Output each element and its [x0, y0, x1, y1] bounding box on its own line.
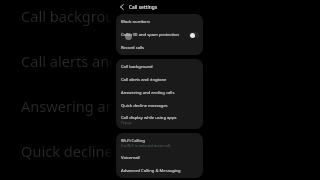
button[interactable]: Answering and ending calls	[116, 86, 203, 99]
staticText: Pop-up	[121, 121, 132, 125]
button[interactable]: Wi-Fi Calling	[116, 134, 203, 151]
staticText: Record calls	[121, 45, 145, 51]
staticText: Wi-Fi Calling	[121, 138, 145, 144]
button[interactable]: Call display while using apps	[116, 112, 203, 128]
staticText: Caller ID and spam protection	[121, 32, 180, 38]
staticText: Voicemail	[121, 155, 140, 161]
staticText: Block numbers	[121, 19, 151, 25]
staticText: Answering and ending calls	[21, 96, 210, 116]
staticText: Call background	[21, 6, 133, 26]
button[interactable]: Record calls	[116, 41, 203, 54]
button[interactable]: Caller ID and spam protection toggle	[189, 32, 199, 38]
staticText: Call alerts and ringtone	[21, 51, 182, 71]
button[interactable]: Call background	[116, 60, 203, 73]
staticText: Call alerts and ringtone	[121, 77, 167, 83]
button[interactable]: Block numbers	[116, 15, 203, 28]
staticText: Call display while using apps	[121, 115, 177, 121]
staticText: Call background	[121, 64, 153, 70]
staticText: Use Wi-Fi to make and receive calls	[121, 144, 171, 148]
staticText: Quick decline messages	[121, 103, 168, 109]
button[interactable]: Caller ID and spam protection	[116, 28, 203, 41]
button[interactable]: Back	[117, 2, 127, 12]
button[interactable]: Call alerts and ringtone	[116, 73, 203, 86]
button[interactable]: Voicemail	[116, 151, 203, 164]
staticText: Answering and ending calls	[121, 90, 175, 96]
staticText: Call settings	[129, 4, 157, 11]
button[interactable]: Advanced Calling & Messaging	[116, 164, 203, 177]
staticText: Advanced Calling & Messaging	[121, 168, 181, 174]
button[interactable]: Quick decline messages	[116, 99, 203, 112]
staticText: Quick decline messages	[21, 141, 185, 161]
